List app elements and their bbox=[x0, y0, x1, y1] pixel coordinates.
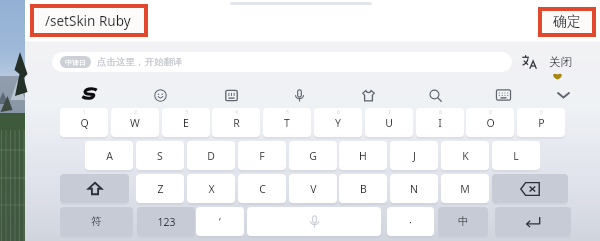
staticText: F bbox=[259, 149, 265, 163]
button[interactable]: Backspace bbox=[492, 174, 568, 203]
button[interactable]: K bbox=[441, 141, 489, 170]
staticText: L bbox=[513, 149, 519, 163]
staticText: 1 bbox=[83, 109, 86, 116]
button[interactable]: ’ bbox=[196, 207, 244, 236]
staticText: 中 bbox=[458, 215, 469, 228]
staticText: 4 bbox=[235, 109, 238, 116]
staticText: 2 bbox=[134, 109, 137, 116]
staticText: 6 bbox=[337, 109, 340, 116]
staticText: B bbox=[360, 182, 367, 196]
staticText: T bbox=[284, 116, 290, 130]
button[interactable]: Shift bbox=[60, 174, 129, 203]
button[interactable]: /setSkin Ruby bbox=[34, 8, 144, 33]
button[interactable]: H bbox=[339, 141, 387, 170]
staticText: 7 bbox=[388, 109, 391, 116]
button[interactable]: Y bbox=[314, 108, 362, 137]
staticText: H bbox=[359, 149, 367, 163]
button[interactable]: Sogou bbox=[75, 80, 103, 108]
button[interactable]: 123 bbox=[137, 207, 195, 236]
button[interactable]: E bbox=[162, 108, 210, 137]
button[interactable]: · bbox=[387, 207, 434, 236]
button[interactable]: Skin bbox=[354, 81, 382, 109]
staticText: 8 bbox=[439, 109, 442, 116]
button[interactable]: 中译日 bbox=[52, 52, 512, 72]
button[interactable]: Translate bbox=[519, 51, 539, 71]
staticText: Z bbox=[157, 182, 164, 196]
staticText: A bbox=[106, 149, 113, 163]
button[interactable]: Panel bbox=[217, 81, 245, 109]
staticText: S bbox=[157, 149, 163, 163]
button[interactable]: N bbox=[390, 174, 438, 203]
staticText: N bbox=[410, 182, 418, 196]
staticText: X bbox=[208, 182, 215, 196]
staticText: 123 bbox=[157, 215, 176, 229]
button[interactable]: S bbox=[136, 141, 184, 170]
staticText: ’ bbox=[219, 215, 221, 229]
button[interactable]: Enter bbox=[495, 207, 571, 236]
button[interactable]: R bbox=[212, 108, 260, 137]
button[interactable]: 中 bbox=[438, 207, 488, 236]
button[interactable]: Search bbox=[421, 81, 449, 109]
staticText: Y bbox=[335, 116, 341, 130]
button[interactable]: C bbox=[238, 174, 286, 203]
staticText: 点击这里，开始翻译 bbox=[97, 56, 183, 68]
staticText: K bbox=[462, 149, 469, 163]
button[interactable]: G bbox=[289, 141, 337, 170]
staticText: 3 bbox=[185, 109, 188, 116]
button[interactable]: V bbox=[289, 174, 337, 203]
button[interactable]: I bbox=[416, 108, 464, 137]
button[interactable]: T bbox=[263, 108, 311, 137]
staticText: P bbox=[538, 116, 545, 130]
staticText: J bbox=[413, 149, 416, 163]
button[interactable]: 确定 bbox=[542, 11, 592, 33]
staticText: 关闭 bbox=[549, 55, 572, 69]
button[interactable]: D bbox=[187, 141, 235, 170]
button[interactable]: L bbox=[492, 141, 540, 170]
button[interactable]: P bbox=[517, 108, 565, 137]
button[interactable]: W bbox=[111, 108, 159, 137]
button[interactable]: 符 bbox=[60, 207, 133, 236]
staticText: C bbox=[259, 182, 266, 196]
staticText: 5 bbox=[286, 109, 289, 116]
button[interactable]: B bbox=[339, 174, 387, 203]
staticText: G bbox=[309, 149, 317, 163]
button[interactable]: F bbox=[238, 141, 286, 170]
button[interactable]: X bbox=[187, 174, 235, 203]
button[interactable]: J bbox=[390, 141, 438, 170]
button[interactable]: M bbox=[441, 174, 489, 203]
button[interactable]: U bbox=[365, 108, 413, 137]
button[interactable]: Collapse bbox=[549, 81, 577, 109]
staticText: 确定 bbox=[553, 13, 581, 31]
staticText: I bbox=[438, 116, 442, 130]
staticText: 中译日 bbox=[65, 58, 86, 67]
staticText: · bbox=[409, 215, 412, 229]
staticText: V bbox=[310, 182, 317, 196]
button[interactable]: Keyboard bbox=[489, 81, 517, 109]
button[interactable]: Voice input bbox=[285, 81, 313, 109]
staticText: /setSkin Ruby bbox=[45, 12, 131, 30]
staticText: D bbox=[207, 149, 215, 163]
staticText: Q bbox=[80, 116, 89, 130]
staticText: W bbox=[130, 116, 140, 130]
button[interactable]: Q bbox=[60, 108, 108, 137]
staticText: R bbox=[233, 116, 240, 130]
staticText: 0 bbox=[540, 109, 543, 116]
staticText: E bbox=[183, 116, 189, 130]
staticText: U bbox=[385, 116, 393, 130]
button[interactable]: Space bbox=[247, 207, 381, 236]
button[interactable]: 关闭 bbox=[543, 52, 577, 72]
staticText: M bbox=[460, 182, 470, 196]
staticText: 符 bbox=[91, 215, 102, 228]
button[interactable]: A bbox=[85, 141, 133, 170]
button[interactable]: Z bbox=[136, 174, 184, 203]
staticText: O bbox=[486, 116, 495, 130]
staticText: 9 bbox=[489, 109, 492, 116]
button[interactable]: O bbox=[466, 108, 514, 137]
button[interactable]: Emoji bbox=[146, 81, 174, 109]
